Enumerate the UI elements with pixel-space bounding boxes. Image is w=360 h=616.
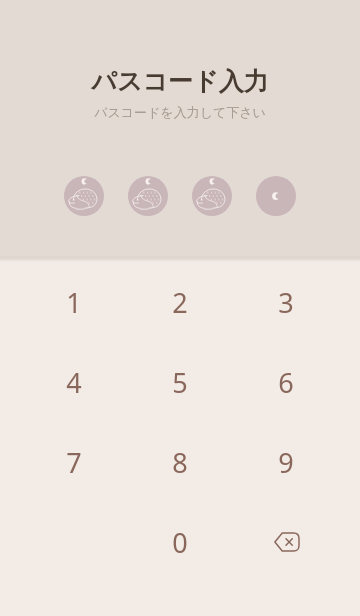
staticText: 6 bbox=[278, 364, 294, 401]
button[interactable]: 4 bbox=[21, 342, 127, 422]
staticText: 3 bbox=[278, 284, 294, 321]
staticText: 7 bbox=[66, 444, 82, 481]
button[interactable]: 1 bbox=[21, 262, 127, 342]
button[interactable]: 8 bbox=[127, 422, 233, 502]
staticText: 8 bbox=[172, 444, 188, 481]
button[interactable]: 9 bbox=[233, 422, 339, 502]
button[interactable]: 6 bbox=[233, 342, 339, 422]
staticText: 0 bbox=[172, 524, 188, 561]
button[interactable]: 0 bbox=[127, 502, 233, 582]
button[interactable]: Delete bbox=[233, 502, 339, 582]
button[interactable]: 5 bbox=[127, 342, 233, 422]
button[interactable]: 2 bbox=[127, 262, 233, 342]
staticText: 1 bbox=[66, 284, 82, 321]
staticText: 5 bbox=[172, 364, 188, 401]
other: Delete bbox=[264, 520, 308, 564]
staticText: 9 bbox=[278, 444, 294, 481]
staticText: 2 bbox=[172, 284, 188, 321]
button[interactable]: 7 bbox=[21, 422, 127, 502]
staticText: パスコード入力 bbox=[91, 66, 269, 97]
button[interactable]: 3 bbox=[233, 262, 339, 342]
staticText: パスコードを入力して下さい bbox=[94, 104, 266, 120]
staticText: 4 bbox=[66, 364, 82, 401]
